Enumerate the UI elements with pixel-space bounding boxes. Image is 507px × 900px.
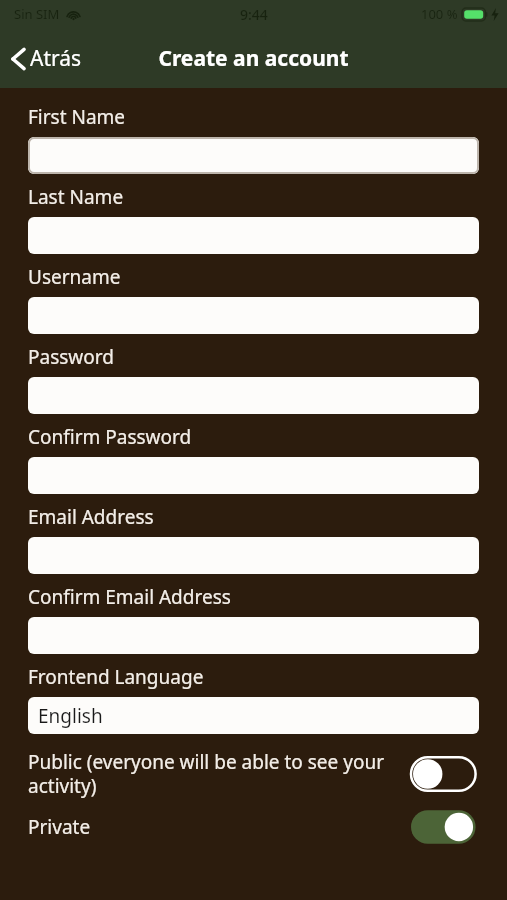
staticText: Sin SIM xyxy=(14,5,60,23)
staticText: Create an account xyxy=(158,44,349,73)
staticText: Atrás xyxy=(30,44,82,73)
staticText: 100 % xyxy=(421,5,458,23)
button[interactable]: Public (everyone will be able to see you… xyxy=(28,747,479,800)
staticText: Email Address xyxy=(28,504,154,530)
staticText: English xyxy=(38,703,103,729)
other: Back xyxy=(10,46,26,72)
button[interactable] xyxy=(28,217,479,254)
button[interactable] xyxy=(28,537,479,574)
staticText: Public (everyone will be able to see you… xyxy=(28,749,399,798)
button[interactable]: Back xyxy=(0,38,94,79)
button[interactable]: Toggle on xyxy=(411,808,479,846)
staticText: Confirm Email Address xyxy=(28,584,231,610)
staticText: Private xyxy=(28,814,399,840)
button[interactable]: English xyxy=(28,697,479,734)
button[interactable]: Private xyxy=(28,806,479,848)
button[interactable] xyxy=(28,377,479,414)
button[interactable] xyxy=(28,617,479,654)
staticText: 9:44 xyxy=(240,5,268,24)
button[interactable]: Toggle off xyxy=(411,755,479,793)
button[interactable] xyxy=(28,137,479,174)
staticText: Confirm Password xyxy=(28,424,192,450)
staticText: Frontend Language xyxy=(28,664,204,690)
staticText: First Name xyxy=(28,104,126,130)
button[interactable] xyxy=(28,297,479,334)
staticText: Username xyxy=(28,264,121,290)
button[interactable] xyxy=(28,457,479,494)
staticText: Password xyxy=(28,344,114,370)
staticText: Last Name xyxy=(28,184,124,210)
